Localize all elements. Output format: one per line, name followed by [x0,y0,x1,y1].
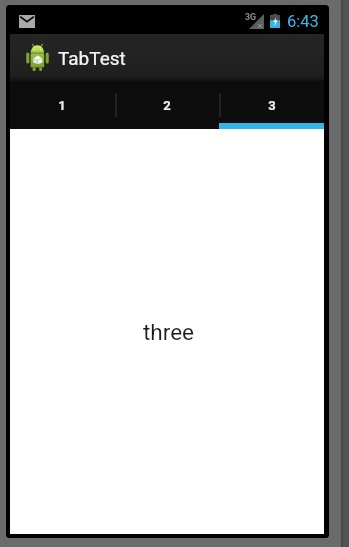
button[interactable]: 2 [114,81,219,129]
staticText: 1 [58,98,66,113]
staticText: three [143,319,195,345]
other: New message [19,15,35,28]
button[interactable]: TabTest [10,34,150,81]
staticText: 3 [268,98,276,113]
button[interactable]: 3 [219,81,324,129]
staticText: 6:43 [287,12,319,31]
staticText: 2 [163,98,171,113]
staticText: 3G [245,12,257,22]
staticText: TabTest [58,47,126,69]
button[interactable]: 1 [10,81,114,129]
